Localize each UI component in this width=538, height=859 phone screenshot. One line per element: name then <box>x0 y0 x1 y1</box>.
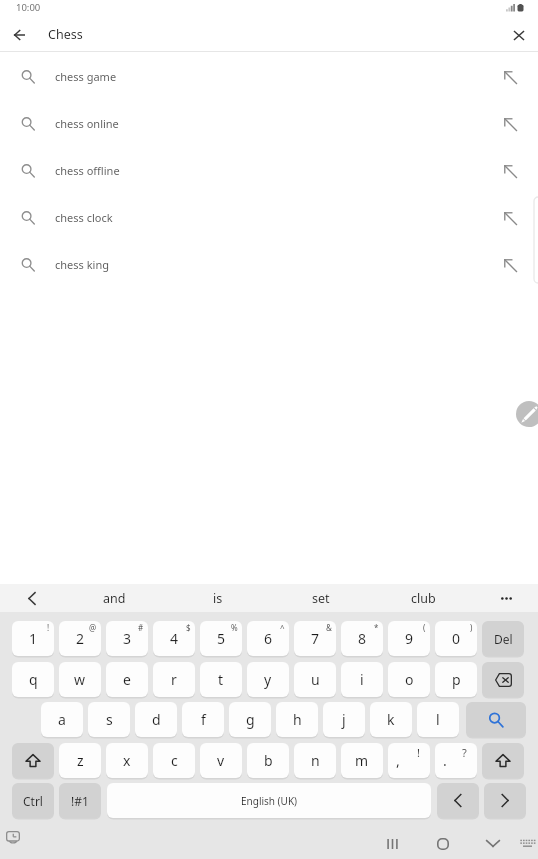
button[interactable]: , <box>388 743 430 778</box>
button[interactable]: r <box>153 662 195 697</box>
button[interactable]: p <box>435 662 477 697</box>
button[interactable]: Hide keyboard <box>471 820 515 859</box>
button[interactable]: l <box>417 702 459 737</box>
button[interactable]: g <box>229 702 271 737</box>
button[interactable]: Switch keyboard <box>508 820 538 858</box>
button[interactable]: x <box>106 743 148 778</box>
button[interactable]: 6 <box>247 621 289 656</box>
button[interactable]: n <box>294 743 336 778</box>
button[interactable]: w <box>59 662 101 697</box>
button[interactable]: o <box>388 662 430 697</box>
button[interactable]: t <box>200 662 242 697</box>
staticText: English (UK) <box>241 794 298 808</box>
button[interactable]: and <box>63 584 166 612</box>
button[interactable]: 9 <box>388 621 430 656</box>
button[interactable]: Insert chess offline <box>493 154 527 188</box>
staticText: 1 <box>29 629 38 648</box>
staticText: . <box>443 751 447 770</box>
button[interactable]: z <box>59 743 101 778</box>
button[interactable]: Insert chess clock <box>493 201 527 235</box>
button[interactable]: club <box>372 584 475 612</box>
button[interactable]: j <box>323 702 365 737</box>
button[interactable]: chess online <box>0 100 538 147</box>
button[interactable]: Backspace <box>482 662 524 697</box>
other: Shift <box>25 753 41 769</box>
staticText: chess king <box>55 257 109 272</box>
button[interactable]: h <box>276 702 318 737</box>
button[interactable]: !#1 <box>59 783 101 818</box>
button[interactable]: set <box>269 584 372 612</box>
button[interactable]: 2 <box>59 621 101 656</box>
button[interactable]: Insert chess online <box>493 107 527 141</box>
staticText: 8 <box>358 629 367 648</box>
button[interactable]: b <box>247 743 289 778</box>
button[interactable]: is <box>166 584 269 612</box>
staticText: q <box>29 670 38 689</box>
button[interactable]: y <box>247 662 289 697</box>
staticText: n <box>311 751 320 770</box>
button[interactable]: f <box>182 702 224 737</box>
button[interactable]: Insert chess king <box>493 248 527 282</box>
button[interactable]: chess clock <box>0 194 538 241</box>
button[interactable]: 0 <box>435 621 477 656</box>
button[interactable]: u <box>294 662 336 697</box>
button[interactable]: . <box>435 743 477 778</box>
staticText: ! <box>417 745 420 760</box>
staticText: % <box>231 622 238 633</box>
button[interactable]: chess game <box>0 53 538 100</box>
button[interactable]: Del <box>482 621 524 656</box>
button[interactable]: English (UK) <box>107 783 431 818</box>
button[interactable]: Compose <box>516 401 538 427</box>
button[interactable]: 8 <box>341 621 383 656</box>
staticText: club <box>411 590 436 607</box>
button[interactable]: Shift <box>482 743 524 778</box>
button[interactable]: 5 <box>200 621 242 656</box>
button[interactable]: chess king <box>0 241 538 288</box>
button[interactable]: Clipboard <box>0 820 26 846</box>
other: Move right <box>501 794 509 807</box>
button[interactable]: 1 <box>12 621 54 656</box>
staticText: ^ <box>280 622 285 633</box>
staticText: 4 <box>170 629 179 648</box>
staticText: s <box>106 710 113 729</box>
staticText: Ctrl <box>23 793 43 809</box>
button[interactable]: Recents <box>370 820 414 859</box>
button[interactable]: a <box>41 702 83 737</box>
staticText: 2 <box>76 629 85 648</box>
button[interactable]: s <box>88 702 130 737</box>
button[interactable]: i <box>341 662 383 697</box>
button[interactable]: Move left <box>437 783 479 818</box>
button[interactable]: 4 <box>153 621 195 656</box>
button[interactable]: Move right <box>484 783 526 818</box>
button[interactable]: Previous suggestions <box>0 584 63 612</box>
button[interactable]: chess offline <box>0 147 538 194</box>
button[interactable]: e <box>106 662 148 697</box>
button[interactable]: Ctrl <box>12 783 54 818</box>
staticText: $ <box>186 622 191 633</box>
button[interactable]: c <box>153 743 195 778</box>
button[interactable]: d <box>135 702 177 737</box>
button[interactable]: m <box>341 743 383 778</box>
button[interactable]: Home <box>421 820 465 859</box>
button[interactable]: 3 <box>106 621 148 656</box>
staticText: k <box>387 710 395 729</box>
button[interactable]: k <box>370 702 412 737</box>
button[interactable]: Search <box>466 702 526 737</box>
button[interactable]: q <box>12 662 54 697</box>
button[interactable]: Shift <box>12 743 54 778</box>
button[interactable]: Clear <box>506 22 532 48</box>
staticText: h <box>293 710 302 729</box>
button[interactable]: Back <box>6 22 32 48</box>
staticText: u <box>311 670 320 689</box>
staticText: v <box>217 751 225 770</box>
staticText: 10:00 <box>16 1 41 14</box>
button[interactable]: More options <box>475 584 538 612</box>
staticText: ? <box>462 745 467 760</box>
button[interactable]: v <box>200 743 242 778</box>
staticText: is <box>213 590 223 607</box>
staticText: chess game <box>55 69 117 84</box>
button[interactable]: 7 <box>294 621 336 656</box>
staticText: f <box>201 710 206 729</box>
staticText: 0 <box>452 629 461 648</box>
button[interactable]: Insert chess game <box>493 60 527 94</box>
